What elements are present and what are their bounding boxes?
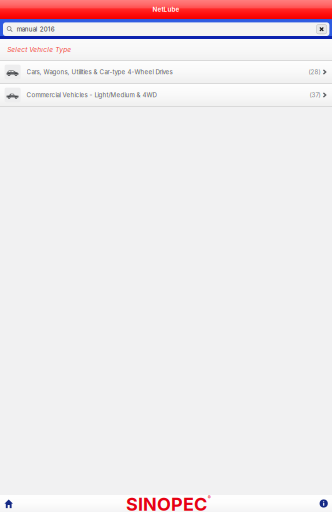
button[interactable]: Cars, Wagons, Utilities & Car-type 4-Whe… <box>0 61 332 83</box>
staticText: Select Vehicle Type <box>7 45 71 53</box>
staticText: ® <box>208 495 211 500</box>
staticText: (28) <box>308 68 320 76</box>
staticText: NetLube <box>152 6 179 13</box>
staticText: SINOPEC <box>126 493 207 512</box>
button[interactable]: Clear search <box>316 24 327 34</box>
staticText: manual 2016 <box>17 25 55 33</box>
button[interactable]: Commercial Vehicles - Light/Medium & 4WD <box>0 84 332 106</box>
button[interactable]: Information <box>320 497 332 510</box>
staticText: (37) <box>309 91 320 99</box>
button[interactable]: Home <box>0 496 13 511</box>
staticText: Cars, Wagons, Utilities & Car-type 4-Whe… <box>26 68 172 76</box>
staticText: Commercial Vehicles - Light/Medium & 4WD <box>26 91 156 99</box>
